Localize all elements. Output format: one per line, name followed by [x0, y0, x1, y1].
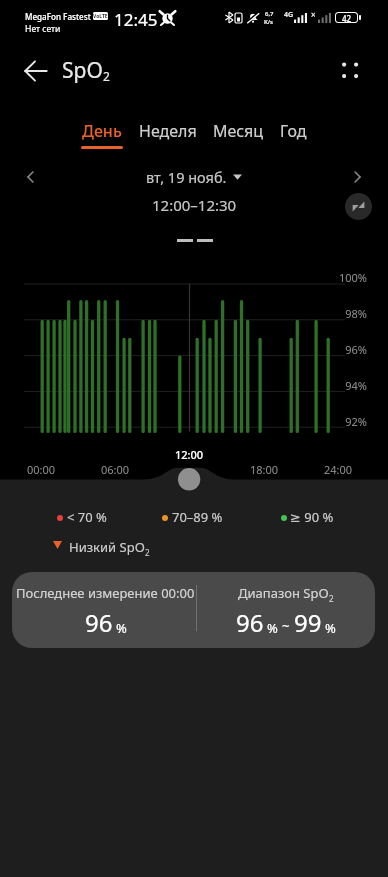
button[interactable]: Next day [344, 164, 370, 190]
staticText: вт, 19 нояб. [146, 167, 227, 187]
staticText: 2 [145, 547, 150, 558]
button[interactable]: Год [280, 120, 307, 146]
button[interactable]: День [81, 120, 123, 149]
staticText: 2 [103, 68, 110, 84]
staticText: День [82, 120, 122, 142]
button[interactable]: Back [19, 54, 53, 88]
staticText: < 70 % [67, 508, 107, 526]
staticText: Последнее измерение 00:00 [16, 584, 195, 602]
staticText: K/s [264, 18, 274, 26]
staticText: Диапазон SpO [238, 584, 329, 602]
staticText: 24:00 [324, 462, 353, 477]
staticText: Низкий SpO [69, 538, 145, 556]
staticText: ~ [282, 617, 290, 635]
staticText: % [116, 619, 127, 637]
staticText: Месяц [213, 120, 264, 142]
button[interactable]: ≥ 90 % [275, 508, 319, 526]
button[interactable]: Низкий SpO [53, 538, 150, 556]
button[interactable]: More options [332, 51, 368, 87]
staticText: 06:00 [101, 462, 130, 477]
staticText: % [267, 619, 278, 637]
staticText: MegaFon Fastest [25, 11, 91, 22]
staticText: 96 [236, 606, 264, 639]
staticText: 70–89 % [172, 508, 223, 526]
button[interactable]: Месяц [213, 120, 264, 146]
staticText: 98% [345, 306, 367, 321]
button[interactable]: Measure SpO2 [345, 193, 372, 220]
staticText: 4G [284, 10, 294, 20]
staticText: 12:00–12:30 [152, 195, 237, 215]
button[interactable]: вт, 19 нояб. [146, 167, 242, 187]
staticText: 96% [345, 342, 367, 357]
button[interactable]: < 70 % [51, 508, 91, 526]
staticText: 96 [85, 606, 113, 639]
staticText: × [311, 9, 316, 20]
staticText: 92% [345, 414, 367, 429]
staticText: 99 [294, 606, 322, 639]
staticText: 18:00 [250, 462, 279, 477]
staticText: 12:45 [114, 8, 158, 31]
staticText: 6,7 [265, 10, 274, 18]
staticText: 12:00 [175, 447, 204, 462]
staticText: SpO [62, 56, 103, 85]
button[interactable]: 70–89 % [156, 508, 207, 526]
staticText: Год [280, 120, 307, 142]
staticText: Неделя [139, 120, 197, 142]
staticText: 2 [329, 593, 334, 604]
staticText: Нет сети [25, 23, 61, 35]
button[interactable]: Previous day [18, 164, 44, 190]
button[interactable]: Последнее измерение 00:00 [12, 572, 375, 648]
staticText: 00:00 [27, 462, 56, 477]
staticText: 42 [342, 13, 352, 22]
staticText: 100% [338, 270, 367, 285]
staticText: 94% [345, 378, 367, 393]
button[interactable]: Неделя [139, 120, 197, 146]
staticText: % [325, 619, 336, 637]
staticText: ≥ 90 % [290, 508, 334, 526]
staticText: VoLTE [93, 13, 108, 20]
